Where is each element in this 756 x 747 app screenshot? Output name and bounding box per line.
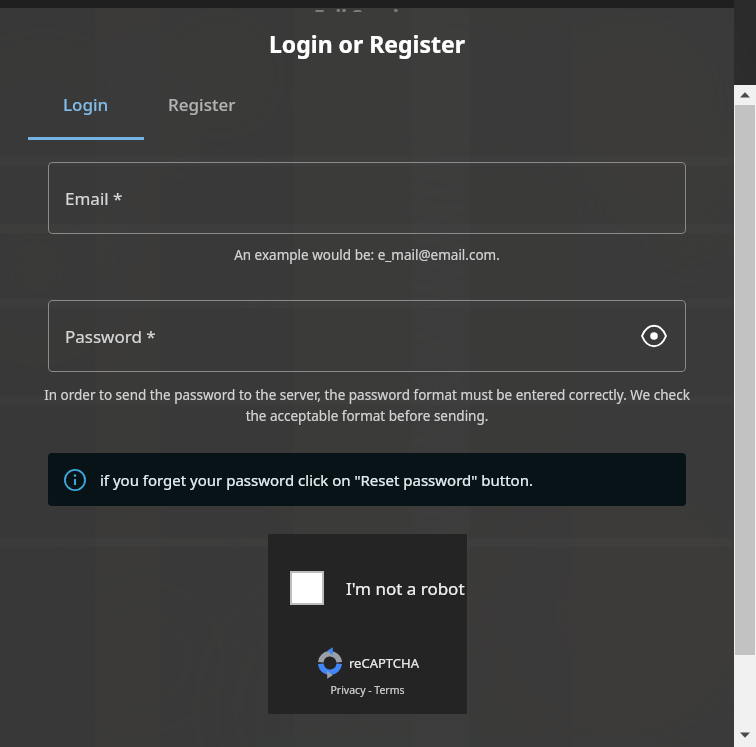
staticText: Login or Register (0, 28, 734, 59)
button[interactable]: Scroll down (734, 725, 756, 745)
staticText: Register (168, 93, 236, 116)
staticText: Privacy - Terms (268, 683, 467, 697)
button[interactable]: I'm not a robot checkbox (268, 534, 467, 714)
staticText: reCAPTCHA (349, 654, 419, 672)
staticText: In order to send the password to the ser… (42, 386, 692, 425)
staticText: Password * (65, 325, 156, 348)
staticText: Evil Service (314, 4, 420, 12)
staticText: An example would be: e_mail@email.com. (0, 246, 734, 264)
staticText: Email * (65, 187, 123, 210)
button[interactable]: Login (28, 83, 144, 126)
staticText: I'm not a robot (346, 577, 465, 600)
button[interactable]: Show password (634, 316, 674, 356)
button[interactable]: if you forget your password click on "Re… (48, 453, 686, 506)
button[interactable]: Scroll up (734, 85, 756, 105)
staticText: if you forget your password click on "Re… (100, 470, 533, 490)
staticText: Login (63, 93, 109, 116)
button[interactable]: Email * (48, 162, 686, 234)
button[interactable]: Register (144, 83, 260, 126)
button[interactable]: Password * (48, 300, 686, 372)
